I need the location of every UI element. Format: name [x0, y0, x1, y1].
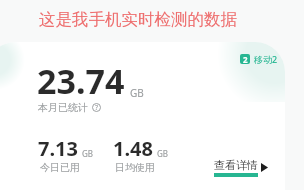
staticText: ? — [95, 103, 99, 112]
staticText: 移动2 — [254, 53, 278, 65]
staticText: 本月已统计 — [38, 101, 88, 114]
other: Info — [92, 103, 101, 112]
staticText: 这是我手机实时检测的数据 — [39, 9, 237, 30]
staticText: 查看详情 — [214, 158, 258, 172]
staticText: 今日已用 — [40, 161, 80, 174]
staticText: 1.48 — [113, 135, 153, 162]
staticText: 2 — [243, 54, 248, 64]
staticText: 23.74 — [37, 58, 125, 104]
staticText: GB — [82, 148, 94, 159]
staticText: GB — [130, 86, 144, 100]
button[interactable]: 2 — [240, 53, 278, 65]
staticText: 7.13 — [38, 135, 78, 162]
button[interactable]: 本月已统计 — [38, 101, 101, 114]
button[interactable]: 查看详情 — [214, 158, 268, 177]
staticText: GB — [157, 148, 169, 159]
staticText: 日均使用 — [115, 161, 155, 174]
